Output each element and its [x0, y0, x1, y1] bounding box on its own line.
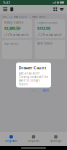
staticText: Settings: [50, 139, 61, 143]
button[interactable]: Payments Due: [35, 19, 65, 38]
button[interactable]: Reports: [22, 132, 45, 146]
staticText: Start a new shift? Closing totals will b…: [18, 72, 48, 86]
staticText: Reports: [28, 139, 39, 143]
button[interactable]: Print: [58, 5, 65, 13]
staticText: +12% vs last week: [37, 33, 61, 37]
staticText: Staff Totals: [37, 42, 52, 45]
staticText: Start: [42, 89, 48, 92]
staticText: $2,480.50: [4, 25, 20, 31]
staticText: +12% vs last week: [4, 33, 28, 37]
button[interactable]: Start: [42, 89, 48, 92]
staticText: Today's Sales: [4, 21, 23, 24]
staticText: Tue, 12 Mar 2024 · Main Store: [2, 15, 46, 18]
button[interactable]: Staff Totals: [35, 40, 65, 59]
staticText: $312.00: [37, 25, 50, 31]
staticText: Drawer Count: [18, 65, 46, 70]
button[interactable]: Store: [8, 5, 15, 13]
button[interactable]: Menu: [2, 5, 8, 13]
staticText: Top Items: [4, 42, 18, 45]
button[interactable]: Settings: [45, 132, 67, 146]
button[interactable]: Scan: [52, 5, 58, 13]
button[interactable]: Today's Sales: [2, 19, 32, 38]
staticText: 9:41: [3, 0, 10, 5]
button[interactable]: Top Items: [2, 40, 32, 59]
staticText: Payments Due: [37, 21, 58, 24]
staticText: Register: [5, 139, 17, 143]
button[interactable]: Register: [0, 132, 22, 146]
